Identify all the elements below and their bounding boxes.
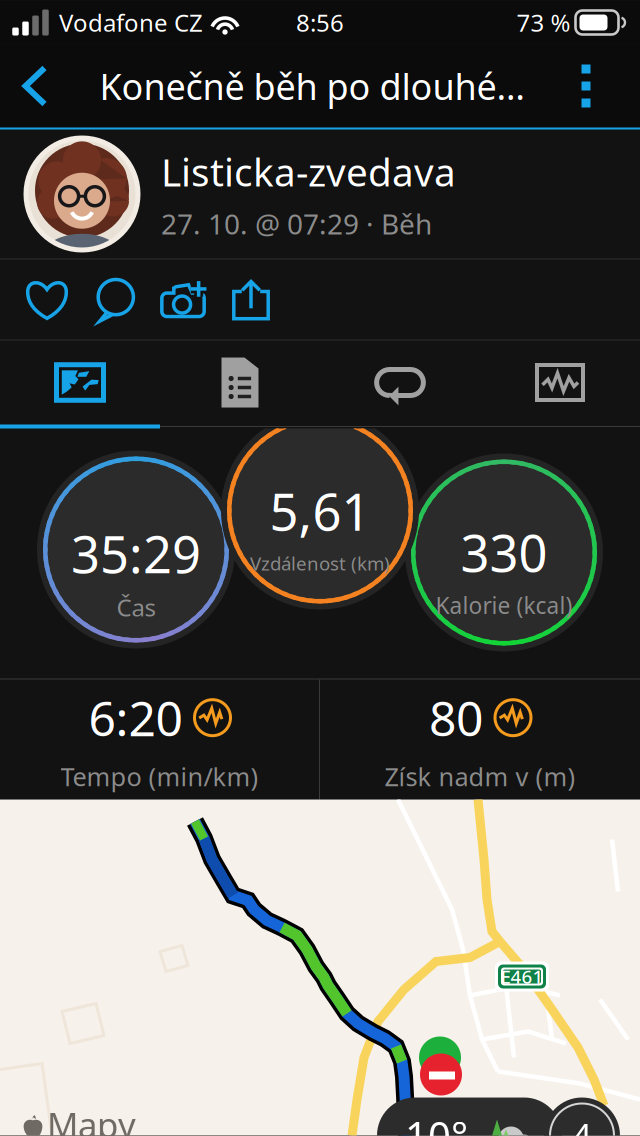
- button[interactable]: Map: [0, 340, 160, 424]
- staticText: 8:56: [296, 7, 344, 38]
- staticText: Listicka-zvedava: [161, 146, 456, 197]
- staticText: Získ nadm v (m): [384, 760, 575, 793]
- staticText: Čas: [116, 591, 155, 623]
- staticText: E461: [500, 964, 543, 989]
- staticText: 10°: [405, 1109, 468, 1136]
- staticText: Mapy: [47, 1101, 136, 1136]
- staticText: Kalorie (kcal): [435, 590, 572, 620]
- staticText: 330: [460, 519, 547, 586]
- button[interactable]: Charts: [480, 340, 640, 424]
- staticText: Vodafone CZ: [59, 7, 203, 38]
- staticText: 5,61: [269, 477, 370, 545]
- staticText: Vzdálenost (km): [250, 551, 390, 575]
- staticText: 6:20: [88, 686, 182, 749]
- staticText: Tempo (min/km): [60, 760, 258, 793]
- button[interactable]: Comment: [81, 259, 149, 339]
- staticText: Konečně běh po dlouhé…: [99, 62, 524, 110]
- staticText: 80: [429, 686, 483, 749]
- staticText: 35:29: [71, 520, 201, 587]
- button[interactable]: Laps: [320, 340, 480, 424]
- staticText: 4: [572, 1112, 592, 1136]
- button[interactable]: Back: [6, 44, 64, 127]
- button[interactable]: Add photo: [149, 259, 217, 339]
- staticText: 73 %: [516, 7, 570, 38]
- button[interactable]: More options: [556, 44, 616, 127]
- button[interactable]: Share: [217, 259, 285, 339]
- button[interactable]: Details: [160, 340, 320, 424]
- button[interactable]: Like: [13, 259, 81, 339]
- staticText: 27. 10. @ 07:29 · Běh: [161, 205, 432, 242]
